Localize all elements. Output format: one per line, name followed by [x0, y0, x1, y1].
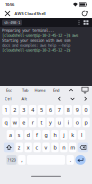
staticText: r — [32, 119, 34, 126]
staticText: [cloudshell-user@ip-10-2-45-12 ~]$ aws — [2, 33, 78, 38]
staticText: y — [49, 119, 52, 126]
staticText: c — [36, 144, 39, 151]
button[interactable]: g — [42, 130, 50, 140]
staticText: q — [4, 119, 7, 126]
staticText: b — [53, 144, 56, 151]
button[interactable]: Ctrl — [0, 95, 16, 103]
staticText: s — [18, 131, 21, 138]
staticText: k — [71, 131, 74, 138]
button[interactable]: . — [66, 155, 74, 165]
button[interactable]: Close — [2, 9, 13, 18]
button[interactable]: m — [69, 142, 76, 152]
button[interactable]: e — [20, 117, 27, 127]
staticText: 10:56 — [5, 2, 14, 7]
staticText: d — [27, 131, 30, 138]
button[interactable]: z — [16, 142, 23, 152]
staticText: Ctrl — [4, 96, 11, 101]
button[interactable]: i — [64, 117, 72, 127]
button[interactable]: n — [60, 142, 67, 152]
button[interactable]: Arrow down — [66, 95, 79, 103]
button[interactable]: 9 — [73, 105, 81, 115]
button[interactable]: j — [60, 130, 67, 140]
button[interactable]: d — [24, 130, 32, 140]
staticText: o — [76, 119, 79, 126]
button[interactable]: Arrow left — [53, 95, 66, 103]
button[interactable]: End — [48, 86, 64, 94]
button[interactable]: q — [2, 117, 10, 127]
button[interactable]: b — [51, 142, 59, 152]
staticText: ?123 — [7, 157, 15, 162]
staticText: p — [85, 119, 88, 126]
staticText: [cloudshell-user@ip-10-2-45-12 ~]$ — [2, 48, 70, 52]
button[interactable]: Alt — [16, 95, 32, 103]
button[interactable]: f — [33, 130, 41, 140]
button[interactable]: 1 — [2, 105, 10, 115]
staticText: h — [53, 131, 56, 138]
button[interactable]: Reload — [79, 9, 90, 18]
button[interactable]: Tab — [18, 86, 32, 94]
staticText: 7 — [58, 106, 61, 113]
staticText: x — [27, 144, 30, 151]
staticText: Alt — [21, 96, 26, 101]
button[interactable]: Enter — [75, 155, 86, 165]
staticText: 2 — [13, 106, 16, 113]
staticText: Preparing your terminal... — [2, 28, 54, 33]
button[interactable]: , — [18, 155, 25, 165]
button[interactable]: 2 — [11, 105, 18, 115]
button[interactable]: 7 — [56, 105, 63, 115]
button[interactable]: p — [82, 117, 90, 127]
button[interactable]: l — [78, 130, 85, 140]
button[interactable]: c — [33, 142, 41, 152]
button[interactable]: Arrow right — [79, 95, 92, 103]
button[interactable]: 8 — [64, 105, 72, 115]
staticText: z — [18, 144, 21, 151]
staticText: Starting your session with aws ssm — [2, 38, 70, 43]
staticText: Home — [34, 88, 45, 93]
button[interactable]: 4 — [29, 105, 36, 115]
staticText: a — [9, 131, 12, 138]
button[interactable]: Hide keyboard — [78, 86, 92, 94]
button[interactable]: 6 — [47, 105, 54, 115]
button[interactable]: k — [69, 130, 76, 140]
button[interactable]: Backspace — [78, 142, 88, 152]
button[interactable]: More options — [76, 18, 82, 26]
staticText: u — [58, 119, 61, 126]
staticText: w — [13, 119, 17, 126]
button[interactable]: h — [51, 130, 59, 140]
button[interactable]: a — [7, 130, 14, 140]
button[interactable]: Arrow up — [64, 86, 78, 94]
button[interactable]: sh-498-1 — [2, 19, 22, 25]
staticText: sh-498-1 — [4, 20, 20, 25]
staticText: 6 — [49, 106, 52, 113]
button[interactable]: v — [42, 142, 50, 152]
staticText: 3 — [22, 106, 25, 113]
staticText: , — [21, 156, 22, 163]
staticText: 9 — [76, 106, 79, 113]
button[interactable]: 0 — [82, 105, 90, 115]
button[interactable]: Home — [32, 86, 48, 94]
staticText: f — [36, 131, 38, 138]
button[interactable]: Split layout — [82, 18, 90, 26]
button[interactable]: t — [38, 117, 45, 127]
button[interactable]: Shift — [4, 142, 14, 152]
button[interactable]: x — [24, 142, 32, 152]
staticText: l — [81, 131, 82, 138]
staticText: t — [41, 119, 43, 126]
staticText: 1 — [4, 106, 7, 113]
staticText: m — [70, 144, 75, 151]
staticText: Tab — [22, 88, 28, 93]
staticText: i — [68, 119, 69, 126]
button[interactable]: o — [73, 117, 81, 127]
button[interactable]: ?123 — [6, 155, 17, 165]
button[interactable]: u — [56, 117, 63, 127]
button[interactable]: r — [29, 117, 36, 127]
button[interactable]: s — [16, 130, 23, 140]
button[interactable]: Esc — [0, 86, 18, 94]
staticText: 8 — [67, 106, 70, 113]
button[interactable]: 3 — [20, 105, 27, 115]
staticText: End — [53, 88, 59, 93]
button[interactable]: 5 — [38, 105, 45, 115]
button[interactable]: y — [47, 117, 54, 127]
button[interactable]: w — [11, 117, 18, 127]
